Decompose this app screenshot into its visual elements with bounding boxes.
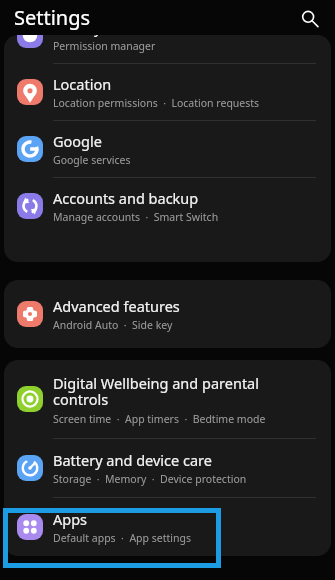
staticText: Permission manager	[53, 39, 156, 53]
staticText: Privacy	[53, 35, 102, 37]
staticText: Location permissions · Location requests	[53, 96, 260, 110]
staticText: Android Auto · Side key	[53, 318, 173, 332]
button[interactable]: Google	[4, 121, 331, 177]
button[interactable]: Apps highlighted	[3, 508, 221, 568]
staticText: Apps	[53, 509, 88, 529]
staticText: Google	[53, 131, 102, 151]
staticText: Digital Wellbeing and parental controls	[53, 373, 317, 410]
staticText: Default apps · App settings	[53, 531, 191, 545]
button[interactable]: Location	[4, 64, 331, 120]
button[interactable]: Digital Wellbeing and parental controls	[4, 360, 331, 438]
staticText: Screen time · App timers · Bedtime mode	[53, 412, 266, 426]
button[interactable]: Privacy	[4, 35, 331, 63]
button[interactable]: Search	[295, 4, 323, 32]
staticText: Google services	[53, 153, 131, 167]
staticText: Location	[53, 74, 112, 94]
staticText: Settings	[14, 4, 91, 31]
button[interactable]: Apps	[4, 498, 331, 556]
button[interactable]: Battery and device care	[4, 439, 331, 497]
button[interactable]: Advanced features	[4, 280, 331, 348]
staticText: Storage · Memory · Device protection	[53, 472, 247, 486]
staticText: Advanced features	[53, 296, 180, 316]
staticText: Manage accounts · Smart Switch	[53, 210, 219, 224]
button[interactable]: Accounts and backup	[4, 178, 331, 234]
staticText: Accounts and backup	[53, 188, 199, 208]
staticText: Battery and device care	[53, 450, 212, 470]
